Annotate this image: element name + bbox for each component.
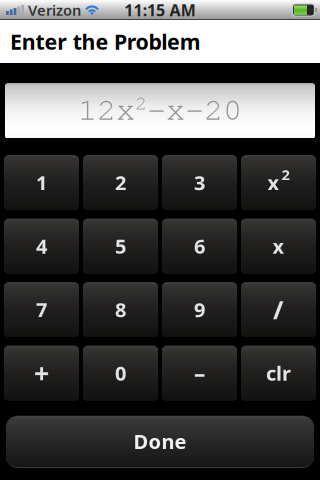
staticText: 7 bbox=[36, 296, 47, 323]
button[interactable]: x bbox=[241, 218, 316, 273]
staticText: 3 bbox=[194, 169, 205, 196]
staticText: 0 bbox=[115, 360, 126, 386]
button[interactable]: / bbox=[241, 282, 316, 337]
button[interactable]: 3 bbox=[162, 155, 237, 210]
staticText: x bbox=[267, 169, 279, 196]
button[interactable]: 0 bbox=[83, 345, 158, 400]
button[interactable]: 6 bbox=[162, 218, 237, 273]
staticText: -x-20 bbox=[147, 89, 242, 128]
staticText: clr bbox=[266, 360, 291, 386]
button[interactable]: minus bbox=[162, 345, 237, 400]
staticText: 1 bbox=[36, 169, 47, 196]
staticText: 11:15 AM bbox=[124, 0, 196, 21]
button[interactable]: Done bbox=[6, 415, 314, 467]
staticText: 6 bbox=[194, 233, 205, 259]
button[interactable]: clr bbox=[241, 345, 316, 400]
button[interactable]: 4 bbox=[4, 218, 79, 273]
button[interactable]: 9 bbox=[162, 282, 237, 337]
staticText: Verizon bbox=[28, 0, 81, 20]
button[interactable]: x squared bbox=[241, 155, 316, 210]
button[interactable]: plus bbox=[4, 345, 79, 400]
staticText: + bbox=[34, 355, 49, 391]
staticText: 12x bbox=[78, 89, 135, 128]
staticText: / bbox=[273, 293, 284, 326]
button[interactable]: 7 bbox=[4, 282, 79, 337]
button[interactable]: 8 bbox=[83, 282, 158, 337]
staticText: x bbox=[272, 233, 284, 259]
staticText: 2 bbox=[135, 90, 147, 114]
staticText: Done bbox=[133, 428, 186, 455]
button[interactable]: 1 bbox=[4, 155, 79, 210]
staticText: 4 bbox=[36, 233, 47, 259]
staticText: 2 bbox=[281, 165, 289, 184]
staticText: 5 bbox=[115, 233, 126, 259]
staticText: 9 bbox=[194, 296, 205, 323]
staticText: – bbox=[194, 358, 205, 388]
button[interactable]: 2 bbox=[83, 155, 158, 210]
staticText: 2 bbox=[115, 169, 126, 196]
staticText: 8 bbox=[115, 296, 126, 323]
staticText: Enter the Problem bbox=[10, 27, 201, 56]
button[interactable]: 5 bbox=[83, 218, 158, 273]
